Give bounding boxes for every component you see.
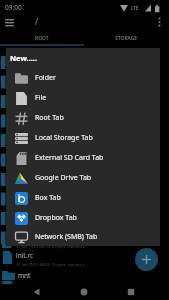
button[interactable]: Google Drive Tab (6, 168, 160, 188)
button[interactable] (30, 285, 44, 299)
staticText: 31 Jan 70 01:00:00 0 bytes rwxrwx-x (16, 244, 85, 249)
button[interactable] (124, 285, 138, 299)
button[interactable]: File (6, 88, 160, 108)
staticText: Google Drive Tab (35, 173, 92, 183)
staticText: 09:00 (5, 3, 22, 12)
button[interactable]: External SD Card Tab (6, 148, 160, 168)
button[interactable]: Root Tab (6, 108, 160, 128)
button[interactable] (77, 285, 91, 299)
button[interactable]: Dropbox Tab (6, 208, 160, 228)
staticText: External SD Card Tab (35, 153, 104, 163)
button[interactable] (152, 15, 167, 29)
staticText: init.rc (16, 251, 34, 260)
button[interactable]: STORAGE (84, 33, 169, 44)
staticText: ROOT (35, 35, 49, 42)
staticText: 31 Jan 70 01:00:00 0 bytes rwxrwx-x (16, 262, 85, 267)
staticText: File (35, 93, 47, 103)
staticText: / (35, 16, 38, 27)
staticText: Dropbox Tab (35, 213, 77, 223)
staticText: LTE (131, 5, 139, 11)
button[interactable]: Box Tab (6, 188, 160, 208)
staticText: Network (SMB) Tab (35, 232, 98, 242)
staticText: New..... (10, 53, 38, 63)
button[interactable]: Local Storage Tab (6, 128, 160, 148)
staticText: Box Tab (35, 193, 61, 203)
staticText: Folder (35, 73, 56, 83)
staticText: Local Storage Tab (35, 133, 93, 143)
staticText: Root Tab (35, 113, 64, 123)
button[interactable]: Folder (6, 68, 160, 88)
staticText: mnt (18, 271, 31, 280)
button[interactable]: ROOT (0, 33, 84, 44)
button[interactable]: Network (SMB) Tab (6, 228, 160, 246)
button[interactable] (2, 16, 18, 30)
button[interactable] (135, 248, 158, 271)
staticText: STORAGE (115, 35, 138, 42)
